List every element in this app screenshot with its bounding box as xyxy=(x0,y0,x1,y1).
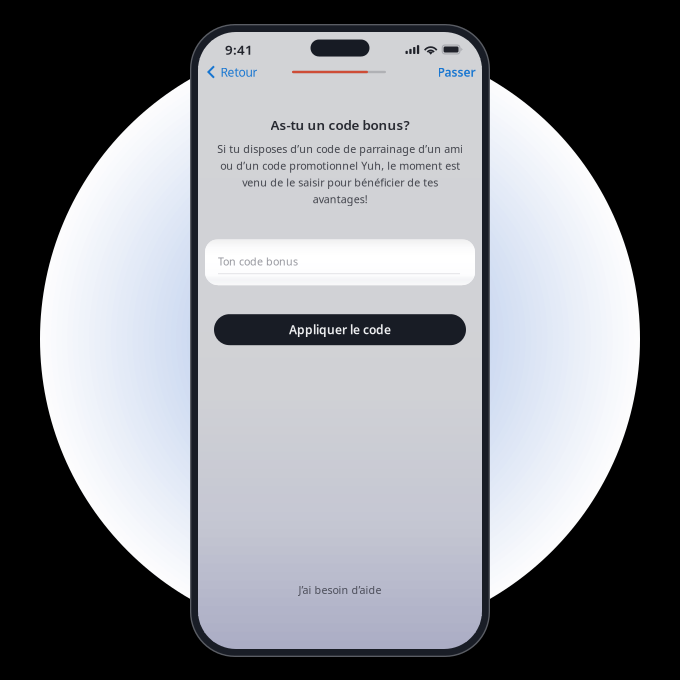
button[interactable]: Appliquer le code xyxy=(214,314,466,345)
button[interactable]: J’ai besoin d’aide xyxy=(290,575,389,605)
staticText: Passer xyxy=(437,64,475,80)
staticText: Appliquer le code xyxy=(289,322,391,338)
staticText: As-tu un code bonus? xyxy=(270,116,409,134)
staticText: Si tu disposes d’un code de parrainage d… xyxy=(217,142,463,206)
staticText: 9:41 xyxy=(225,41,253,58)
staticText: J’ai besoin d’aide xyxy=(298,583,381,597)
button[interactable]: Retour xyxy=(198,58,266,86)
staticText: Ton code bonus xyxy=(218,254,298,268)
staticText: Retour xyxy=(220,64,257,80)
button[interactable]: Passer xyxy=(429,58,482,86)
